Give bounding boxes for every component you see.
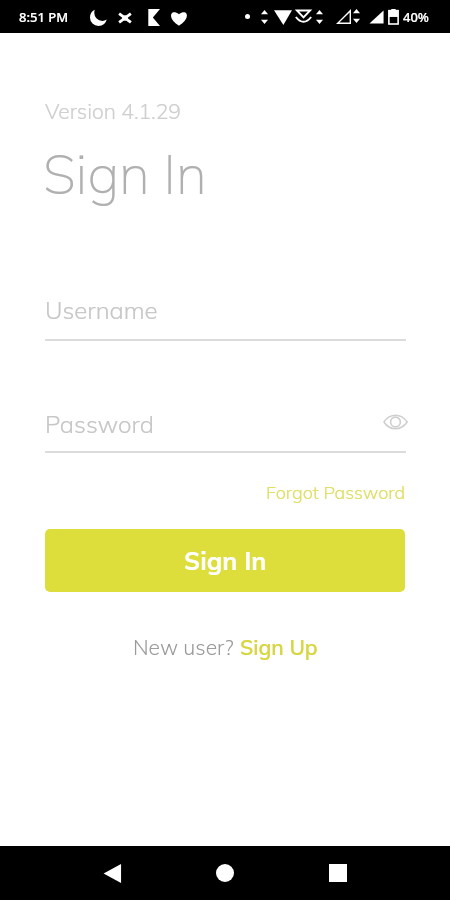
staticText: Sign In — [184, 545, 267, 576]
button[interactable]: Back — [88, 849, 136, 897]
staticText: 8:51 PM — [19, 8, 69, 26]
staticText: New user? — [133, 634, 240, 660]
button[interactable]: Password — [45, 409, 154, 439]
button[interactable]: Show password — [379, 406, 411, 438]
button[interactable]: Sign Up — [240, 634, 318, 660]
button[interactable]: Home — [201, 849, 249, 897]
staticText: Sign In — [43, 140, 207, 208]
button[interactable]: Sign In — [45, 529, 405, 592]
button[interactable]: Forgot Password — [266, 481, 406, 504]
staticText: Version 4.1.29 — [45, 98, 181, 124]
staticText: 40% — [403, 8, 429, 26]
button[interactable]: Recent apps — [314, 849, 362, 897]
button[interactable]: Username — [45, 295, 158, 325]
